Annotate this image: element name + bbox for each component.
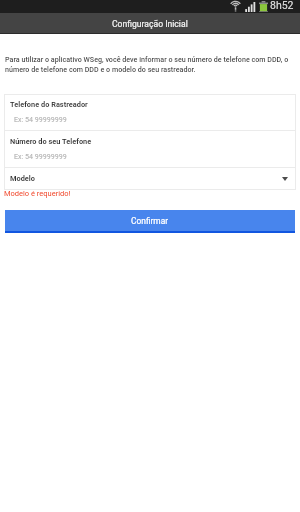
staticText: Modelo	[10, 174, 35, 183]
staticText: 8h52	[270, 0, 294, 11]
button[interactable]: Confirmar	[5, 210, 295, 233]
staticText: Para utilizar o aplicativo WSeg, você de…	[5, 55, 293, 73]
staticText: Telefone do Rastreador	[10, 100, 88, 109]
staticText: Configuração Inicial	[112, 19, 188, 29]
other: Abrir lista de modelos	[282, 177, 288, 181]
staticText: Número do seu Telefone	[10, 137, 92, 146]
button[interactable]: Modelo	[5, 168, 295, 189]
staticText: Ex: 54 99999999	[14, 115, 67, 123]
staticText: Modelo é requerido!	[4, 189, 71, 198]
staticText: Ex: 54 99999999	[14, 152, 67, 160]
staticText: Confirmar	[131, 216, 169, 226]
button[interactable]: Número do seu Telefone	[5, 131, 295, 167]
button[interactable]: Telefone do Rastreador	[5, 95, 295, 130]
